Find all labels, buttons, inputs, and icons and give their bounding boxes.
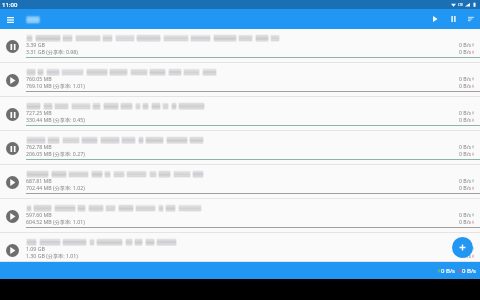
staticText: 597.60 MB — [26, 211, 52, 218]
staticText: 0 B/s — [459, 41, 472, 48]
staticText: 762.78 MB — [26, 143, 52, 150]
staticText: 1.09 GB — [26, 245, 45, 252]
button[interactable]: 597.60 MB — [0, 199, 480, 233]
staticText: 0 B/s — [459, 143, 472, 150]
staticText: 206.05 MB (分享率: 0.27) — [26, 150, 85, 157]
button[interactable]: Sort — [462, 10, 480, 28]
staticText: 0 B/s — [459, 211, 472, 218]
staticText: 0 B/s — [462, 267, 476, 275]
staticText: 0 B/s — [459, 116, 472, 123]
staticText: 1.30 GB (分享率: 1.01) — [26, 252, 78, 259]
staticText: 3.39 GB — [26, 41, 45, 48]
button[interactable]: Resume all — [426, 10, 444, 28]
staticText: 760.05 MB — [26, 75, 52, 82]
button[interactable]: Pause all — [444, 10, 462, 28]
staticText: 702.44 MB (分享率: 1.02) — [26, 184, 85, 191]
staticText: 0 B/s — [459, 75, 472, 82]
button[interactable]: 3.39 GB — [0, 29, 480, 63]
button[interactable]: 760.05 MB — [0, 63, 480, 97]
staticText: 0 B/s — [459, 218, 472, 225]
staticText: 769.10 MB (分享率: 1.01) — [26, 82, 85, 89]
button[interactable]: Add torrent — [452, 237, 473, 258]
staticText: 0 B/s — [459, 48, 472, 55]
staticText: 604.52 MB (分享率: 1.01) — [26, 218, 85, 225]
staticText: 330.44 MB (分享率: 0.45) — [26, 116, 85, 123]
button[interactable]: Menu — [3, 12, 18, 27]
staticText: 0 B/s — [459, 150, 472, 157]
button[interactable]: 1.09 GB — [0, 233, 480, 262]
staticText: 0 B/s — [459, 177, 472, 184]
staticText: 727.25 MB — [26, 109, 52, 116]
staticText: 3.31 GB (分享率: 0.98) — [26, 48, 78, 55]
staticText: 11:00 — [2, 1, 18, 9]
staticText: 0 B/s — [441, 267, 455, 275]
staticText: 0 B/s — [459, 184, 472, 191]
staticText: 687.81 MB — [26, 177, 52, 184]
staticText: 0 B/s — [459, 109, 472, 116]
staticText: 0 B/s — [459, 245, 472, 252]
staticText: 0 B/s — [459, 252, 472, 259]
button[interactable]: 762.78 MB — [0, 131, 480, 165]
staticText: LTE — [458, 3, 463, 7]
button[interactable]: 687.81 MB — [0, 165, 480, 199]
button[interactable]: 727.25 MB — [0, 97, 480, 131]
staticText: 0 B/s — [459, 82, 472, 89]
